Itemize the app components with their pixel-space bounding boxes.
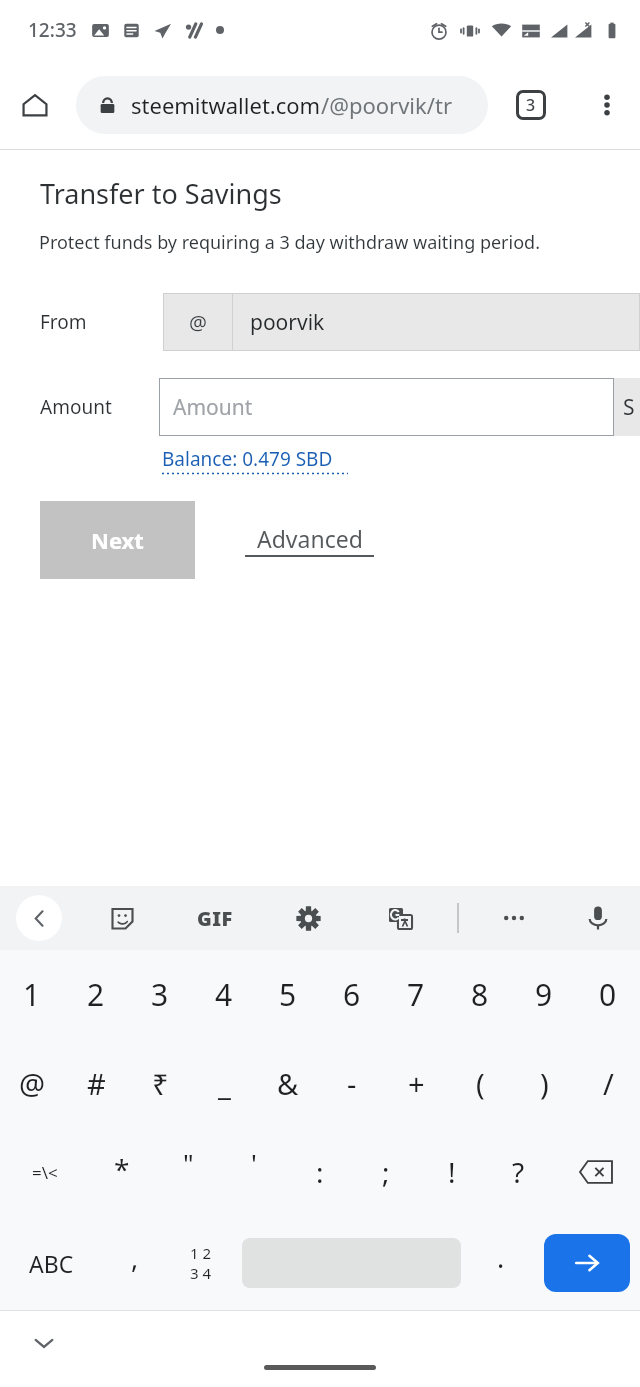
staticText: - <box>347 1064 357 1103</box>
button[interactable]: More <box>490 894 538 942</box>
staticText: Next <box>91 525 144 555</box>
button[interactable]: ) <box>512 1038 576 1128</box>
button[interactable]: @ <box>163 293 640 351</box>
staticText: ABC <box>29 1248 74 1279</box>
button[interactable]: Stickers <box>98 894 146 942</box>
staticText: # <box>87 1064 106 1103</box>
button[interactable]: 8 <box>448 950 512 1038</box>
staticText: @ <box>19 1064 46 1103</box>
button[interactable]: =\< <box>0 1128 89 1216</box>
button[interactable]: 4 <box>192 950 256 1038</box>
staticText: Transfer to Savings <box>40 175 282 212</box>
staticText: steemitwallet.com <box>131 90 321 120</box>
button[interactable]: 1 <box>0 950 64 1038</box>
staticText: & <box>277 1064 299 1103</box>
button[interactable]: Voice input <box>574 894 622 942</box>
button[interactable]: , <box>103 1216 167 1310</box>
staticText: @ <box>189 309 207 336</box>
button[interactable]: @ <box>0 1038 64 1128</box>
button[interactable]: 3 <box>128 950 192 1038</box>
button[interactable]: " <box>155 1128 221 1216</box>
staticText: . <box>497 1239 505 1276</box>
staticText: " <box>183 1145 194 1180</box>
button[interactable]: . <box>469 1216 533 1310</box>
staticText: 3 <box>526 94 536 116</box>
button[interactable]: ; <box>353 1128 419 1216</box>
staticText: =\< <box>32 1161 58 1184</box>
staticText: 4 <box>215 974 233 1015</box>
button[interactable]: / <box>576 1038 640 1128</box>
staticText: , <box>131 1239 139 1276</box>
button[interactable]: ? <box>485 1128 551 1216</box>
button[interactable]: More options <box>582 80 632 130</box>
button[interactable]: Next <box>40 501 195 579</box>
button[interactable]: Amount <box>159 378 614 436</box>
staticText: ? <box>512 1153 525 1191</box>
button[interactable]: Enter <box>544 1234 630 1292</box>
staticText: /@poorvik/tr <box>321 90 453 120</box>
staticText: Balance: 0.479 SBD <box>162 446 333 472</box>
button[interactable]: ABC <box>0 1216 103 1310</box>
button[interactable]: # <box>64 1038 128 1128</box>
staticText: / <box>603 1064 614 1103</box>
staticText: 9 <box>535 974 553 1015</box>
staticText: 3 4 <box>190 1263 212 1283</box>
staticText: 1 2 <box>190 1243 212 1263</box>
staticText: 2 <box>87 974 105 1015</box>
button[interactable]: Hide keyboard <box>20 1319 68 1367</box>
staticText: * <box>114 1150 130 1188</box>
staticText: ) <box>540 1064 549 1103</box>
staticText: ( <box>476 1064 485 1103</box>
staticText: 8 <box>471 974 489 1015</box>
button[interactable]: & <box>256 1038 320 1128</box>
button[interactable]: * <box>89 1128 155 1216</box>
staticText: Amount <box>40 394 112 420</box>
button[interactable]: Balance: 0.479 SBD <box>162 446 348 475</box>
staticText: GIF <box>197 905 233 932</box>
staticText: : <box>316 1153 324 1191</box>
button[interactable]: 0 <box>576 950 640 1038</box>
button[interactable]: ( <box>448 1038 512 1128</box>
button[interactable]: : <box>287 1128 353 1216</box>
button[interactable]: 7 <box>384 950 448 1038</box>
staticText: ! <box>448 1153 456 1191</box>
button[interactable]: + <box>384 1038 448 1128</box>
staticText: + <box>408 1064 425 1103</box>
button[interactable]: 5 <box>256 950 320 1038</box>
staticText: Advanced <box>257 523 363 554</box>
button[interactable]: ₹ <box>128 1038 192 1128</box>
button[interactable]: Settings <box>284 894 332 942</box>
staticText: Protect funds by requiring a 3 day withd… <box>39 230 540 255</box>
staticText: Amount <box>173 393 253 422</box>
staticText: S <box>623 393 635 422</box>
staticText: ; <box>382 1153 390 1191</box>
button[interactable]: _ <box>192 1038 256 1128</box>
button[interactable]: Backspace <box>551 1128 640 1216</box>
button[interactable]: - <box>320 1038 384 1128</box>
button[interactable]: Translate <box>376 894 424 942</box>
button[interactable]: steemitwallet.com <box>76 76 488 134</box>
button[interactable]: Tabs, 3 open <box>504 78 558 132</box>
button[interactable]: ' <box>221 1128 287 1216</box>
staticText: 3 <box>151 974 169 1015</box>
button[interactable]: 2 <box>64 950 128 1038</box>
button[interactable]: Advanced <box>245 523 374 557</box>
staticText: 6 <box>343 974 361 1015</box>
button[interactable]: GIF <box>184 894 246 942</box>
staticText: From <box>40 309 87 335</box>
button[interactable]: ! <box>419 1128 485 1216</box>
button[interactable]: Home <box>10 80 60 130</box>
staticText: 7 <box>407 974 425 1015</box>
button[interactable]: Back <box>16 895 62 941</box>
staticText: _ <box>218 1064 231 1103</box>
button[interactable]: 1 2 <box>167 1216 234 1310</box>
staticText: 12:33 <box>28 17 77 43</box>
staticText: ₹ <box>152 1064 169 1103</box>
staticText: 1 <box>23 974 41 1015</box>
button[interactable]: 6 <box>320 950 384 1038</box>
staticText: ' <box>251 1145 257 1180</box>
staticText: 5 <box>279 974 297 1015</box>
staticText: 0 <box>599 974 617 1015</box>
button[interactable]: 9 <box>512 950 576 1038</box>
